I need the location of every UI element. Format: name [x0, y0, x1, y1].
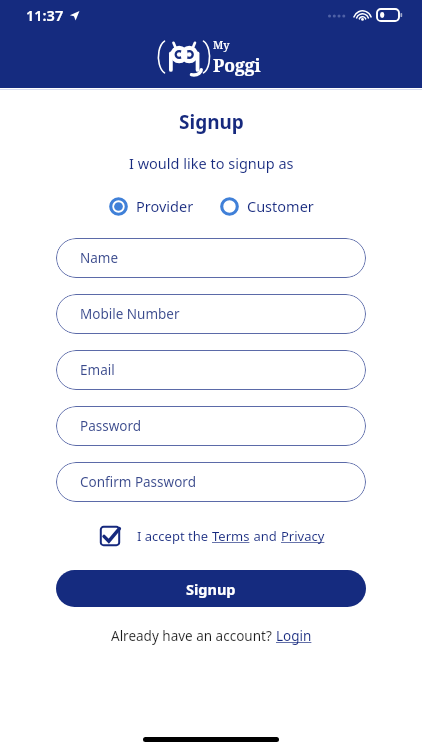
staticText: I accept the	[137, 527, 212, 545]
staticText: Provider	[136, 196, 194, 216]
staticText: Customer	[247, 196, 314, 216]
button[interactable]: Email	[56, 350, 366, 390]
button[interactable]: Login	[276, 627, 312, 645]
staticText: My	[213, 37, 230, 52]
staticText: 11:37	[26, 5, 64, 25]
other: My Poggi logo	[162, 39, 206, 75]
button[interactable]: Customer	[218, 193, 316, 219]
button[interactable]: Provider	[107, 193, 196, 219]
staticText: and	[250, 527, 281, 545]
button[interactable]: Name	[56, 238, 366, 278]
staticText: Confirm Password	[80, 473, 196, 491]
staticText: Name	[80, 249, 119, 267]
staticText: Email	[80, 361, 115, 379]
button[interactable]: Confirm Password	[56, 462, 366, 502]
staticText: Signup	[179, 109, 244, 135]
button[interactable]: Mobile Number	[56, 294, 366, 334]
staticText: Signup	[186, 579, 236, 599]
button[interactable]: Terms	[212, 527, 250, 545]
button[interactable]: Signup	[56, 570, 366, 607]
staticText: Poggi	[213, 53, 261, 77]
staticText: Mobile Number	[80, 305, 180, 323]
staticText: I would like to signup as	[129, 153, 294, 173]
button[interactable]: Privacy	[281, 527, 325, 545]
staticText: Already have an account?	[111, 627, 276, 645]
staticText: Password	[80, 417, 142, 435]
button[interactable]: Password	[56, 406, 366, 446]
button[interactable]: Accept terms checkbox	[97, 523, 123, 549]
